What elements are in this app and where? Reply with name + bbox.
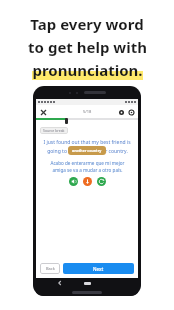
other: Home: [84, 282, 91, 285]
button[interactable]: Next: [63, 263, 134, 274]
button[interactable]: Close: [39, 108, 47, 116]
staticText: 5/18: [83, 109, 92, 114]
other: Back: [58, 281, 62, 285]
button[interactable]: Repeat: [97, 177, 106, 186]
staticText: Acabo de enterarme que mi mejor: [50, 160, 125, 166]
button[interactable]: Play slowly: [83, 177, 92, 186]
button[interactable]: going to move to another country.: [47, 148, 128, 155]
staticText: Tap every word: [30, 14, 144, 34]
staticText: Back: [46, 266, 55, 271]
staticText: Source break: [43, 128, 65, 133]
button[interactable]: I just found out that my best friend is: [43, 139, 131, 146]
staticText: Next: [93, 266, 104, 272]
button[interactable]: Source break: [43, 128, 65, 133]
button[interactable]: More options: [127, 108, 135, 116]
staticText: amiga se va a mudar a otro país.: [52, 167, 123, 173]
button[interactable]: Back: [40, 263, 60, 274]
button[interactable]: Play audio: [69, 177, 78, 186]
staticText: pronunciation.: [32, 60, 143, 80]
staticText: another country: [72, 148, 102, 153]
button[interactable]: Settings: [117, 108, 125, 116]
staticText: to get help with: [28, 37, 147, 57]
